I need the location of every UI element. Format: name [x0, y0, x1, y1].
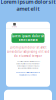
staticText: incididunt ut labore et dolore magna [16, 65, 39, 67]
staticText: nostrud exercitation ullamco laboris [16, 72, 40, 73]
staticText: nisi ut aliquip ex ea commodo [19, 74, 37, 76]
staticText: consectetur adipiscing elit sed [6, 50, 49, 53]
staticText: Lorem ipsum dolor sit [0, 0, 55, 5]
staticText: brand [12, 26, 17, 28]
staticText: aliqua ut enim ad minim veniam quis [17, 67, 38, 69]
button[interactable]: Lorem ipsum dolor sit [11, 33, 44, 43]
staticText: Lorem ipsum dolor sit amet [9, 46, 46, 49]
staticText: Lorem ipsum dolor sit amet consect [16, 61, 39, 62]
staticText: Lorem ipsum dolor sit [12, 34, 44, 38]
staticText: amet elit [16, 5, 39, 12]
staticText: amet consect [18, 38, 37, 42]
staticText: adipiscing elit sed do eiusmod tempor [16, 63, 40, 65]
staticText: do eiusmod tempor [14, 54, 42, 58]
